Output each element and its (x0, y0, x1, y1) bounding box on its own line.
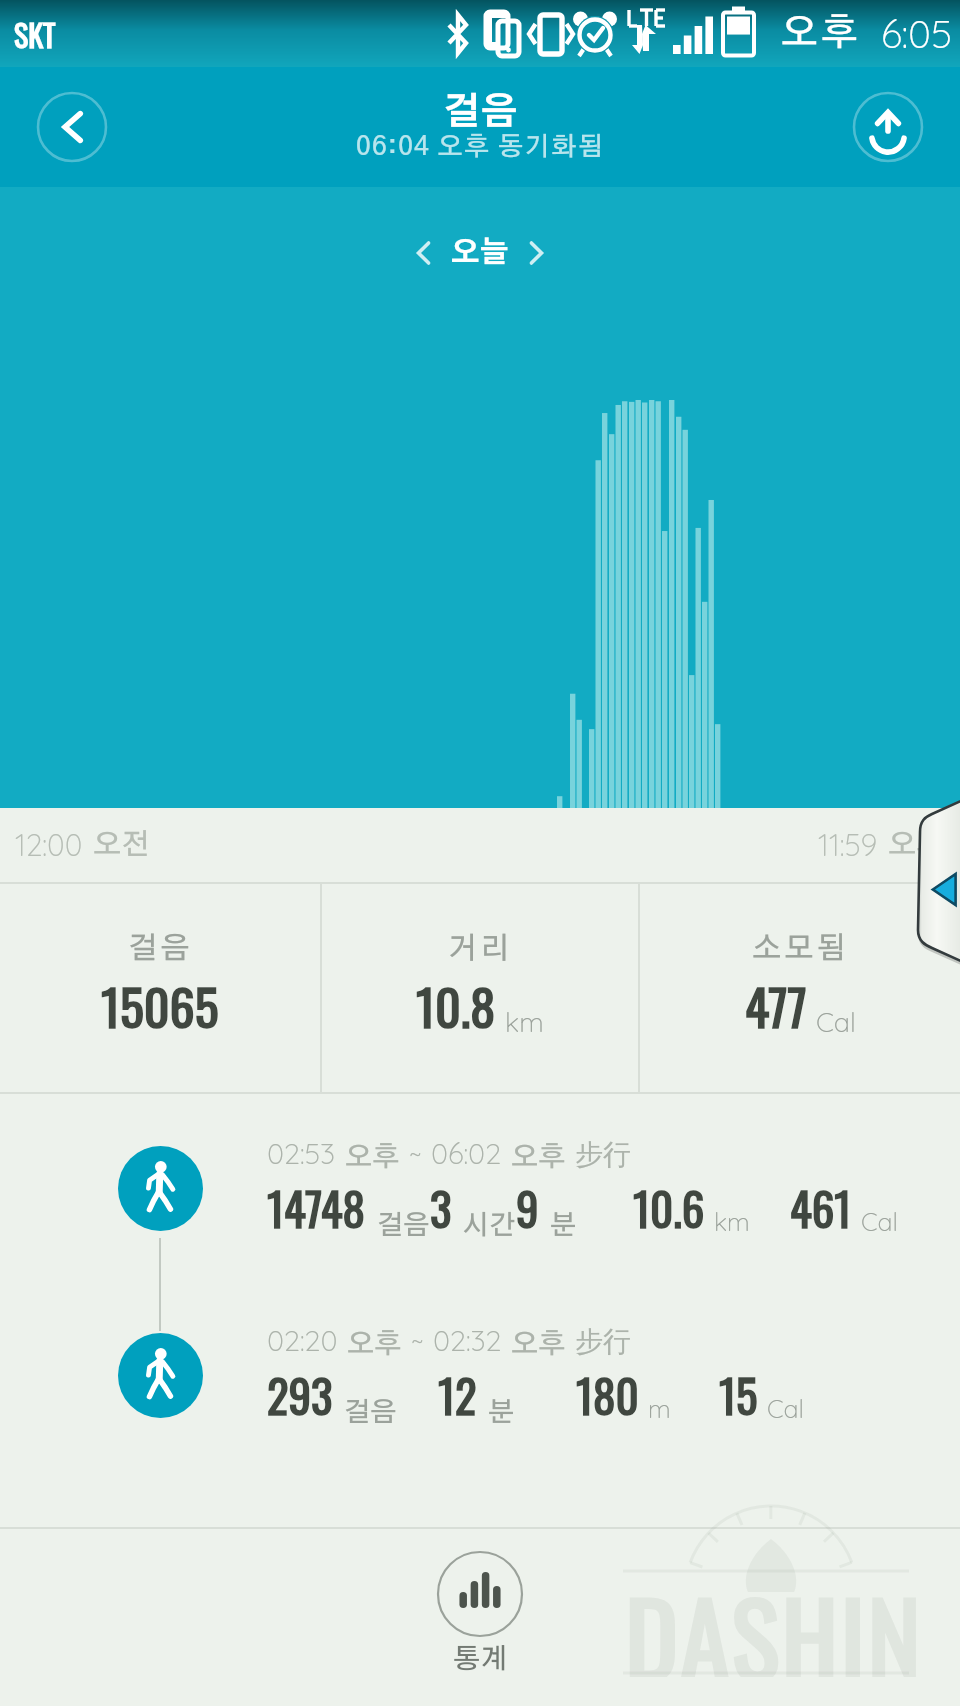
staticText: 02:53 (267, 1135, 336, 1171)
staticText: 9 (516, 1174, 539, 1241)
staticText: 477 (745, 968, 807, 1042)
staticText: 180 (576, 1361, 639, 1428)
staticText: 시간 (463, 1212, 516, 1239)
button[interactable]: Sync (852, 91, 924, 163)
button[interactable]: 통계 (437, 1551, 523, 1674)
button[interactable]: Next day (513, 232, 559, 274)
staticText: 오전 (93, 831, 150, 860)
button[interactable]: 오늘 (451, 239, 509, 268)
staticText: Cal (861, 1206, 898, 1237)
staticText: ~ (411, 1322, 424, 1358)
staticText: 293 (267, 1361, 333, 1428)
button[interactable]: 거리 (322, 884, 638, 1092)
staticText: 15065 (101, 968, 219, 1042)
staticText: 02:32 (433, 1322, 502, 1358)
staticText: ~ (409, 1135, 422, 1171)
button[interactable]: 02:20 (0, 1331, 960, 1518)
staticText: 步行 (575, 1137, 631, 1172)
staticText: 3 (430, 1174, 452, 1241)
button[interactable]: 걸음 (0, 884, 320, 1092)
button[interactable]: Back (36, 91, 108, 163)
staticText: 분 (550, 1212, 577, 1239)
staticText: 통계 (453, 1646, 508, 1674)
staticText: 분 (488, 1399, 515, 1426)
staticText: 10.6 (633, 1174, 705, 1241)
staticText: Cal (767, 1393, 804, 1424)
staticText: 10.8 (416, 968, 496, 1042)
staticText: 거리 (448, 934, 513, 964)
staticText: 걸음 (344, 1399, 397, 1426)
staticText: 오후 (781, 15, 861, 53)
button[interactable]: 02:53 (0, 1144, 960, 1331)
staticText: Cal (816, 1005, 856, 1039)
button[interactable]: 소모됨 (640, 884, 960, 1092)
staticText: 오후 (347, 1331, 402, 1359)
staticText: 오후 (345, 1144, 400, 1172)
staticText: 02:20 (267, 1322, 338, 1358)
staticText: 12 (438, 1361, 477, 1428)
staticText: 걸음 (443, 94, 519, 131)
staticText: 06:02 (431, 1135, 502, 1171)
staticText: 오후 (511, 1331, 566, 1359)
staticText: 걸음 (128, 934, 193, 964)
staticText: m (648, 1393, 671, 1424)
staticText: 步行 (575, 1324, 631, 1359)
staticText: 오후 (888, 831, 945, 860)
staticText: 소모됨 (752, 934, 849, 964)
button[interactable]: Open side panel (918, 816, 960, 946)
button[interactable]: Previous day (401, 232, 447, 274)
staticText: 15 (719, 1361, 758, 1428)
staticText: 11:59 (818, 826, 878, 864)
staticText: km (714, 1206, 750, 1237)
staticText: 6:05 (881, 9, 952, 58)
staticText: 461 (790, 1174, 852, 1241)
staticText: 오후 (511, 1144, 566, 1172)
staticText: SKT (14, 12, 56, 56)
staticText: 12:00 (15, 826, 83, 864)
staticText: 14748 (267, 1174, 366, 1241)
staticText: DASHIN (625, 1561, 924, 1677)
staticText: 걸음 (377, 1212, 430, 1239)
staticText: 06:04 오후 동기화됨 (356, 134, 605, 160)
staticText: km (505, 1005, 544, 1039)
